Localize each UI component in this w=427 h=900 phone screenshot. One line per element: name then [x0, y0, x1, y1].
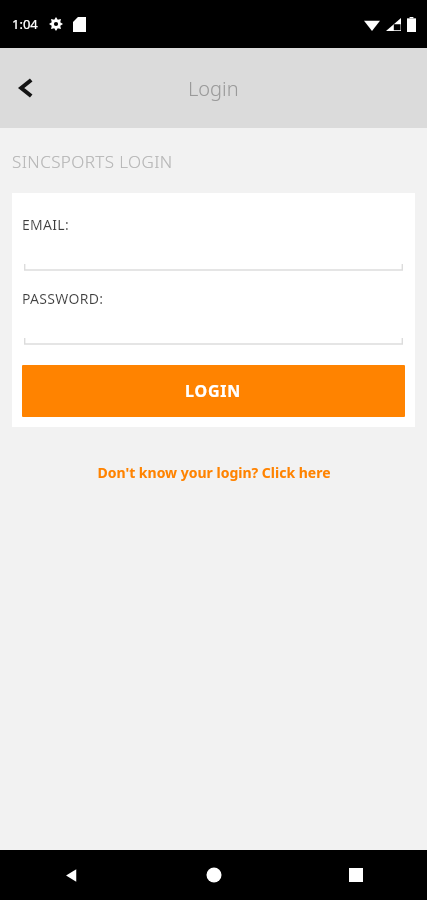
- staticText: Don't know your login? Click here: [97, 463, 331, 482]
- staticText: LOGIN: [185, 380, 242, 402]
- button[interactable]: Back: [0, 850, 143, 900]
- staticText: SINCSPORTS LOGIN: [12, 150, 173, 173]
- button[interactable]: LOGIN: [22, 365, 405, 417]
- staticText: PASSWORD:: [22, 289, 104, 308]
- button[interactable]: Don't know your login? Click here: [89, 459, 339, 486]
- staticText: 1:04: [12, 15, 38, 33]
- button[interactable]: Recent apps: [285, 850, 427, 900]
- button[interactable]: Home: [143, 850, 285, 900]
- staticText: EMAIL:: [22, 215, 70, 234]
- staticText: Login: [188, 75, 239, 102]
- button[interactable]: Back: [0, 62, 52, 114]
